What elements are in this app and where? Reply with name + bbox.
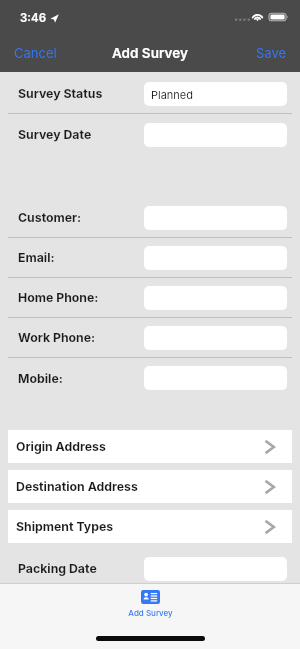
staticText: Origin Address: [16, 439, 106, 454]
other: Add Survey: [141, 590, 160, 604]
staticText: Mobile:: [18, 371, 63, 386]
button[interactable]: Save: [250, 38, 293, 68]
button[interactable]: Origin Address: [8, 430, 292, 463]
button[interactable]: Add Survey: [112, 589, 189, 619]
button[interactable]: Survey Status: [0, 74, 300, 113]
staticText: Survey Date: [18, 127, 92, 142]
button[interactable]: Survey Date: [0, 114, 300, 155]
button[interactable]: Packing Date: [0, 554, 300, 583]
staticText: Shipment Types: [16, 519, 114, 534]
button[interactable]: Destination Address: [8, 470, 292, 503]
staticText: Customer:: [18, 210, 82, 225]
staticText: Save: [256, 45, 287, 61]
staticText: Planned: [151, 88, 194, 101]
button[interactable]: Shipment Types: [8, 510, 292, 543]
staticText: Email:: [18, 250, 55, 265]
staticText: Survey Status: [18, 86, 103, 101]
staticText: Work Phone:: [18, 330, 96, 345]
button[interactable]: Mobile:: [0, 358, 300, 398]
staticText: Packing Date: [18, 561, 97, 576]
button[interactable]: Work Phone:: [0, 318, 300, 357]
button[interactable]: Customer:: [0, 198, 300, 237]
button[interactable]: Email:: [0, 238, 300, 277]
staticText: Home Phone:: [18, 290, 99, 305]
staticText: 3:46: [20, 11, 46, 25]
button[interactable]: Home Phone:: [0, 278, 300, 317]
staticText: Destination Address: [16, 479, 138, 494]
staticText: Add Survey: [128, 608, 173, 618]
staticText: Add Survey: [112, 45, 188, 61]
button[interactable]: Cancel: [8, 38, 63, 68]
staticText: Cancel: [14, 45, 57, 61]
button[interactable]: Planned: [144, 82, 287, 106]
